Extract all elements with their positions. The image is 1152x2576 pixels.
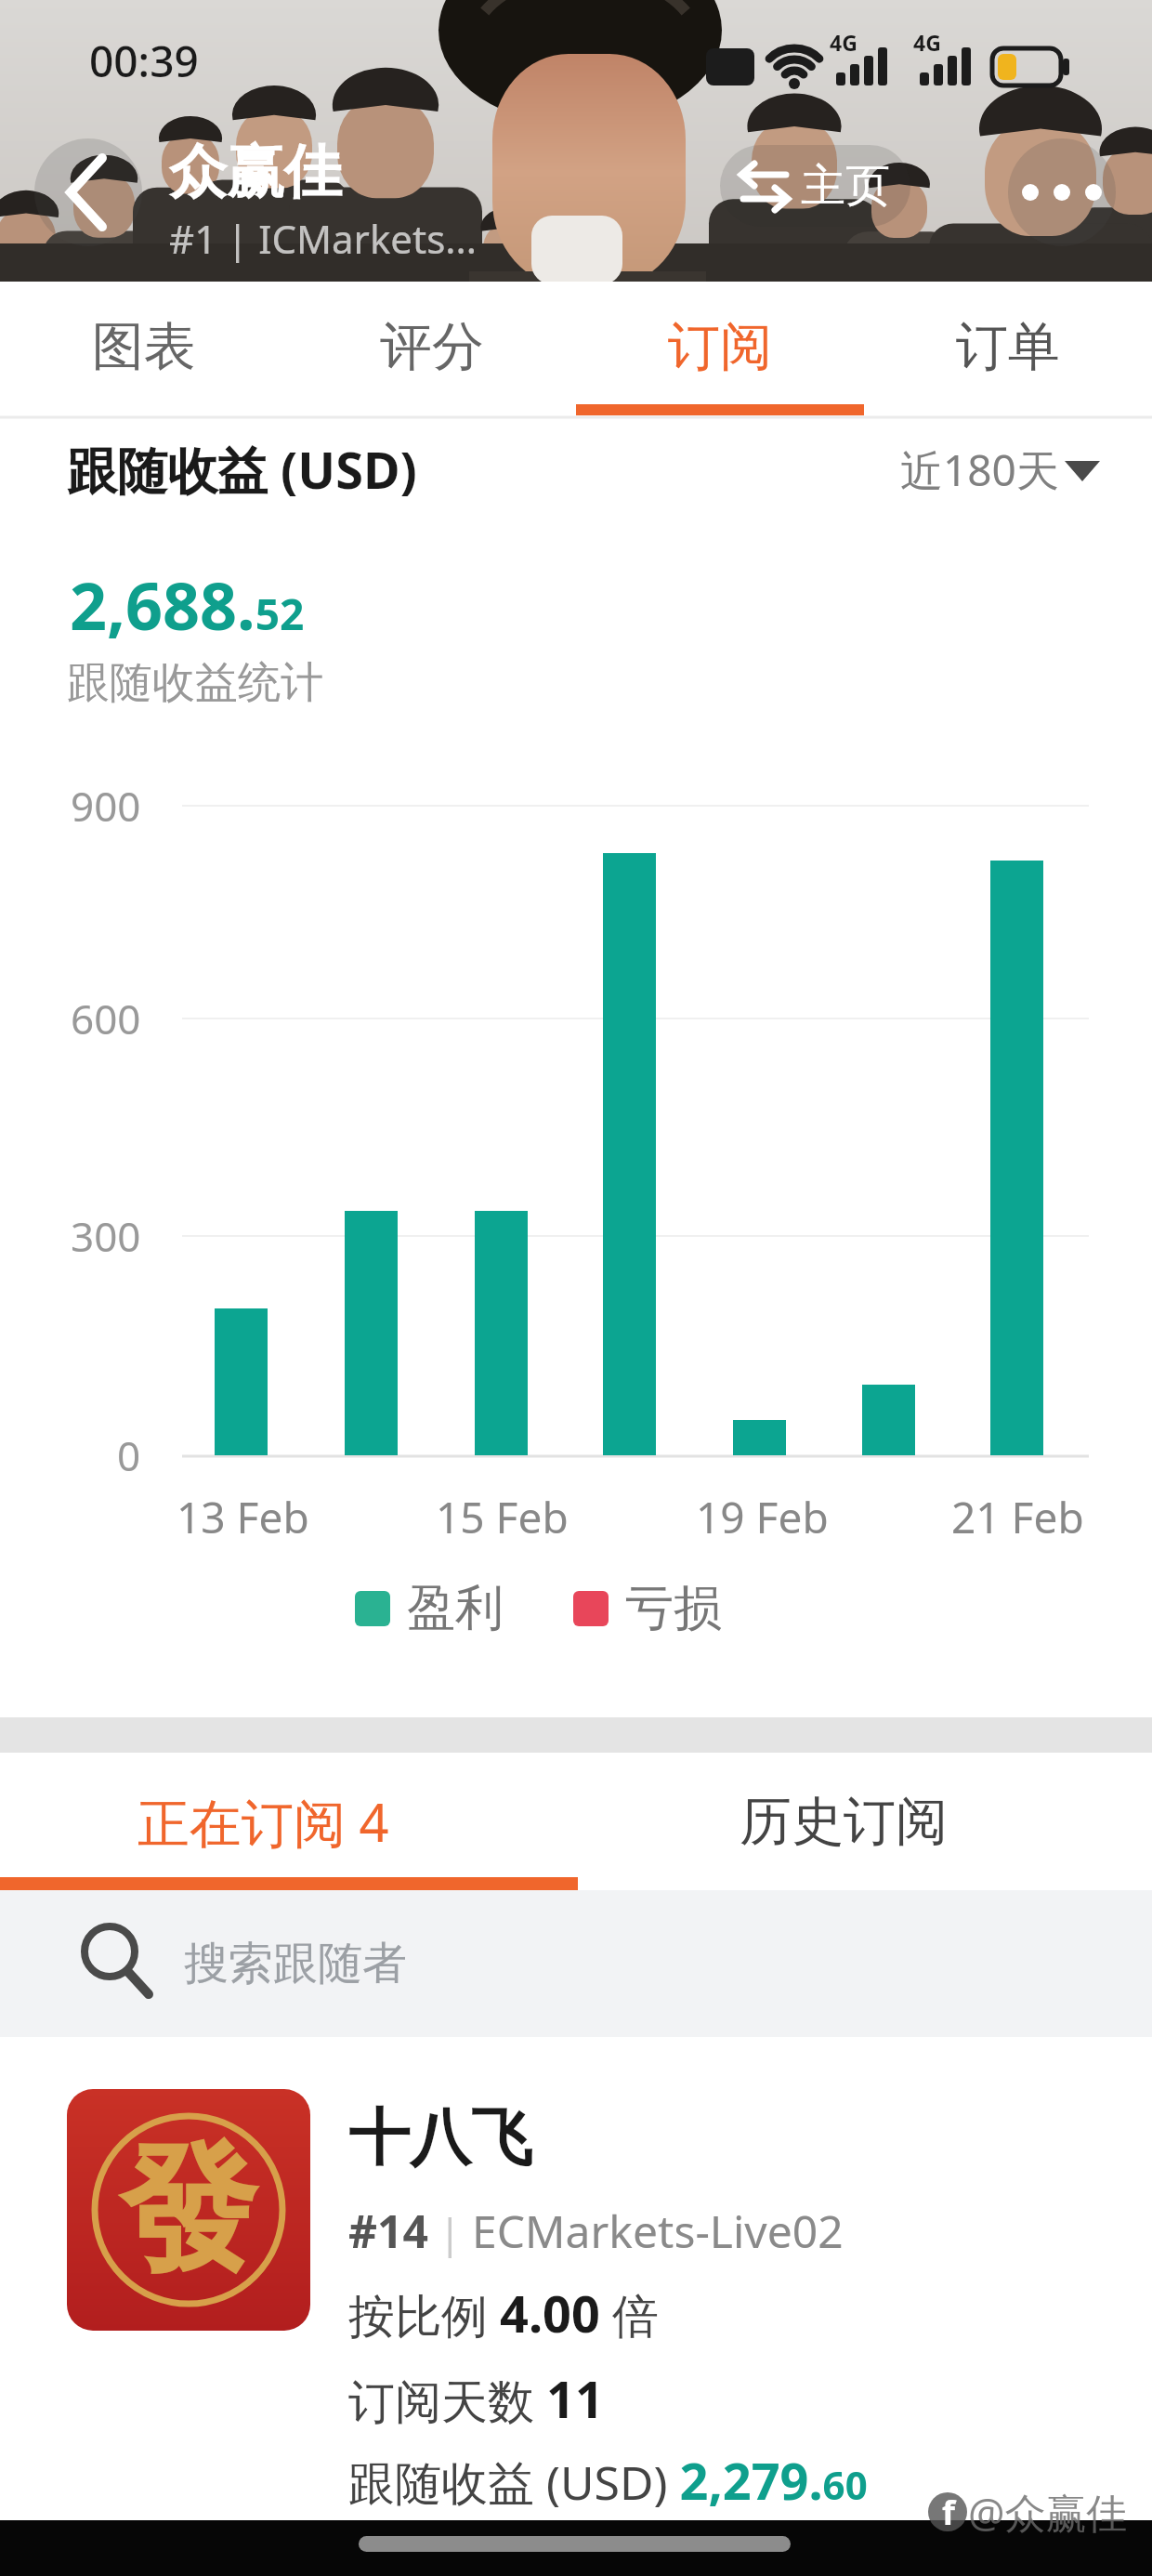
staticText: 跟随收益统计: [67, 656, 323, 710]
button[interactable]: 历史订阅: [576, 1753, 1152, 1890]
staticText: 300: [71, 1208, 141, 1264]
button[interactable]: [1008, 138, 1116, 246]
staticText: 900: [71, 778, 141, 834]
staticText: 4G: [830, 28, 857, 52]
button[interactable]: 评分: [288, 282, 576, 412]
staticText: 评分: [380, 314, 484, 380]
staticText: 2,688.52: [70, 560, 305, 649]
staticText: #1 | ICMarkets...: [169, 212, 478, 263]
staticText: 订单: [956, 314, 1060, 380]
button[interactable]: 近180天: [836, 423, 1106, 516]
staticText: 600: [71, 991, 141, 1046]
staticText: 主页: [801, 158, 890, 214]
button[interactable]: 正在订阅 4: [0, 1753, 576, 1890]
staticText: 订阅天数 11: [348, 2364, 604, 2429]
button[interactable]: [720, 145, 910, 227]
staticText: f: [942, 2490, 955, 2535]
staticText: 13 Feb: [177, 1488, 309, 1546]
staticText: 搜索跟随者: [184, 1936, 407, 1991]
staticText: 21 Feb: [951, 1488, 1084, 1546]
staticText: 历史订阅: [740, 1789, 948, 1855]
staticText: 19 Feb: [696, 1488, 829, 1546]
staticText: 發: [119, 2123, 258, 2298]
staticText: 订阅: [668, 314, 772, 380]
button[interactable]: 订阅: [576, 282, 864, 412]
button[interactable]: 搜索跟随者: [0, 1890, 1152, 2037]
staticText: 4G: [913, 28, 941, 52]
button[interactable]: 订单: [864, 282, 1152, 412]
staticText: 亏损: [625, 1578, 722, 1639]
staticText: 盈利: [407, 1578, 504, 1639]
staticText: 按比例 4.00 倍: [348, 2279, 659, 2344]
button[interactable]: [34, 138, 142, 246]
staticText: 00:39: [89, 32, 199, 90]
staticText: #14 | ECMarkets-Live02: [348, 2201, 844, 2260]
staticText: 近180天: [900, 440, 1059, 499]
button[interactable]: 图表: [0, 282, 288, 412]
staticText: 0: [117, 1427, 141, 1483]
button[interactable]: [37, 2072, 1115, 2520]
staticText: 众赢佳: [169, 136, 342, 208]
staticText: 跟随收益 (USD) 2,279.60: [348, 2446, 868, 2511]
staticText: @众赢佳: [968, 2484, 1128, 2540]
staticText: 15 Feb: [436, 1488, 569, 1546]
staticText: 跟随收益 (USD): [67, 435, 417, 504]
staticText: 图表: [92, 314, 196, 380]
staticText: 正在订阅 4: [137, 1786, 389, 1857]
staticText: 十八飞: [348, 2099, 532, 2176]
